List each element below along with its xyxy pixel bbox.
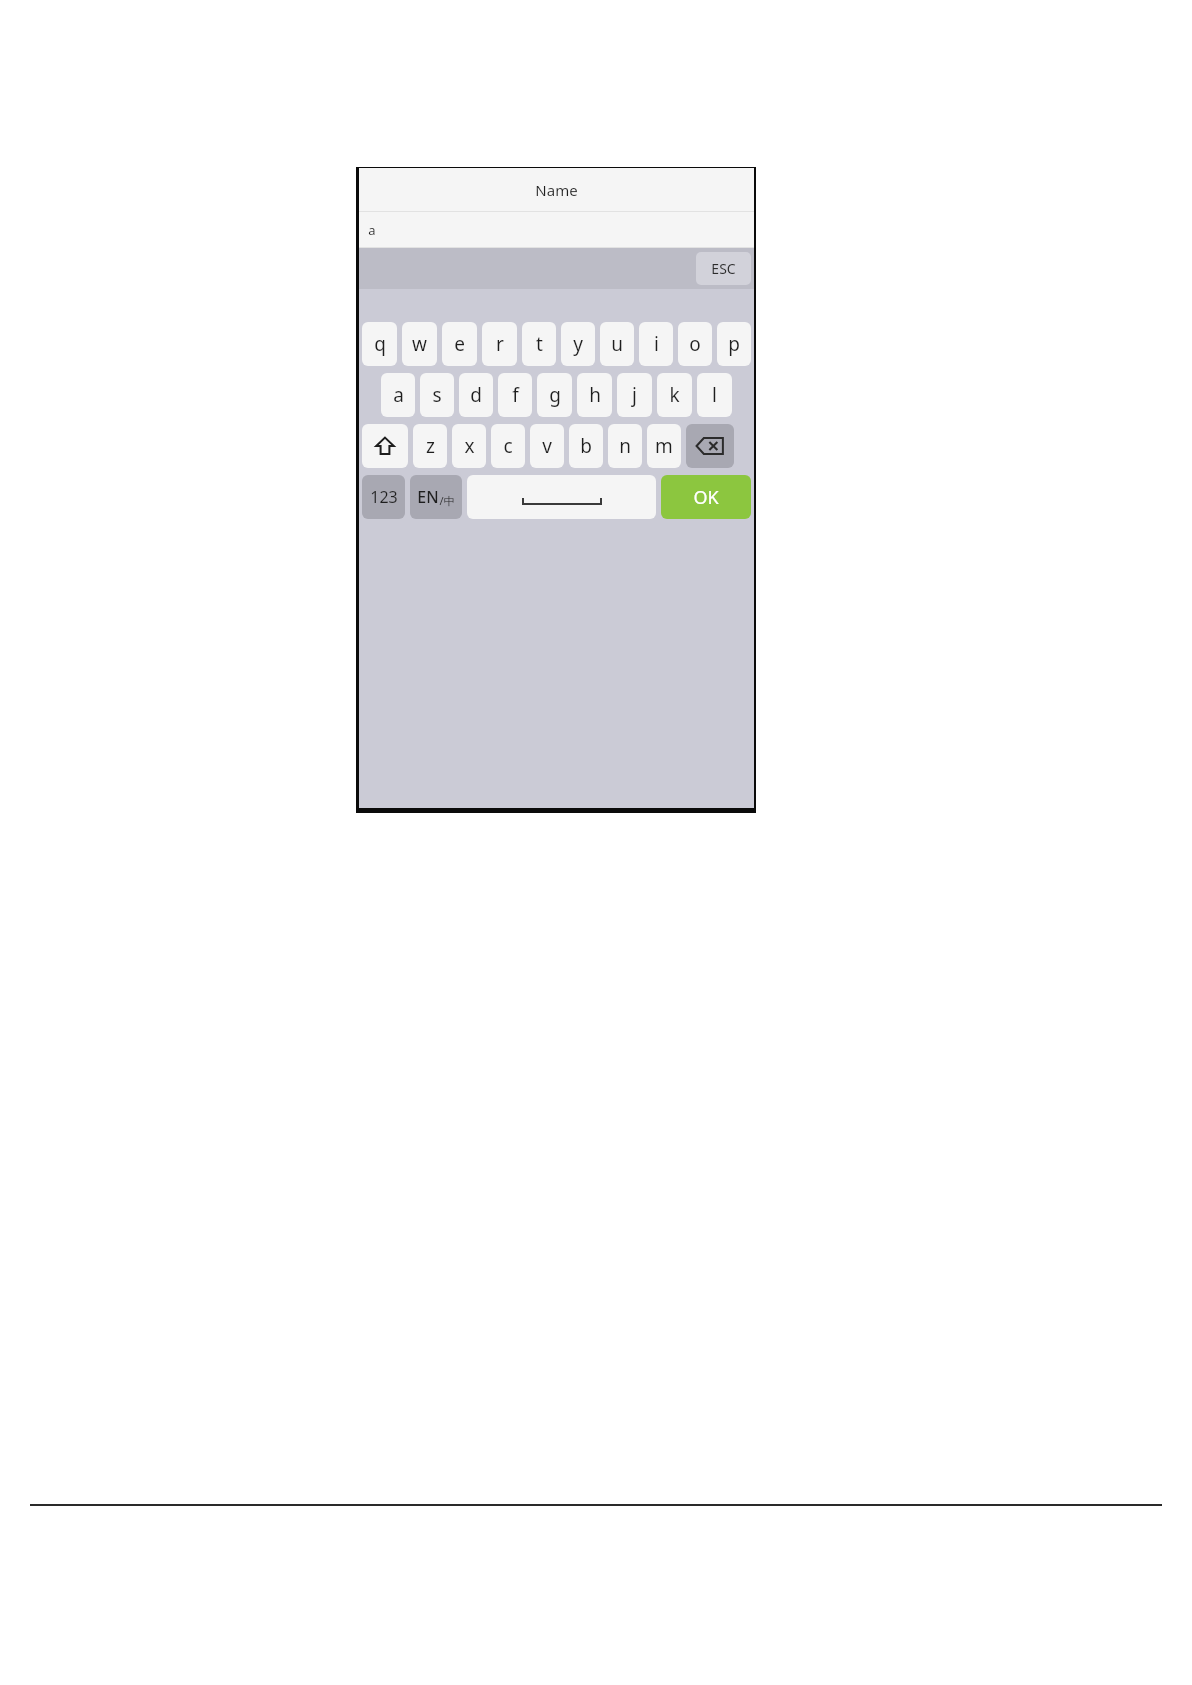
- button[interactable]: s: [420, 373, 454, 417]
- button[interactable]: n: [608, 424, 642, 468]
- staticText: f: [512, 382, 519, 408]
- button[interactable]: Name: [359, 168, 754, 211]
- staticText: m: [655, 433, 673, 459]
- staticText: z: [426, 433, 435, 459]
- staticText: EN: [417, 486, 439, 508]
- staticText: h: [589, 382, 601, 408]
- staticText: i: [654, 331, 659, 357]
- button[interactable]: b: [569, 424, 603, 468]
- staticText: v: [542, 433, 552, 459]
- staticText: j: [632, 382, 637, 408]
- staticText: /中: [439, 493, 455, 508]
- button[interactable]: a: [359, 212, 754, 247]
- staticText: b: [580, 433, 592, 459]
- staticText: e: [454, 331, 465, 357]
- staticText: p: [728, 331, 740, 357]
- staticText: 123: [370, 486, 398, 508]
- button[interactable]: m: [647, 424, 681, 468]
- button[interactable]: Space: [467, 475, 656, 519]
- button[interactable]: r: [482, 322, 517, 366]
- button[interactable]: t: [522, 322, 556, 366]
- staticText: d: [470, 382, 482, 408]
- button[interactable]: f: [498, 373, 532, 417]
- staticText: a: [393, 382, 404, 408]
- staticText: x: [464, 433, 475, 459]
- staticText: g: [549, 382, 561, 408]
- button[interactable]: Backspace: [686, 424, 734, 468]
- button[interactable]: 123: [362, 475, 405, 519]
- staticText: ESC: [711, 259, 736, 278]
- staticText: a: [368, 221, 376, 239]
- button[interactable]: l: [697, 373, 732, 417]
- staticText: c: [503, 433, 513, 459]
- button[interactable]: d: [459, 373, 493, 417]
- staticText: o: [689, 331, 701, 357]
- button[interactable]: k: [657, 373, 692, 417]
- staticText: y: [573, 331, 583, 357]
- button[interactable]: h: [577, 373, 612, 417]
- button[interactable]: j: [617, 373, 652, 417]
- staticText: n: [619, 433, 631, 459]
- staticText: s: [432, 382, 442, 408]
- staticText: t: [536, 331, 543, 357]
- staticText: l: [712, 382, 717, 408]
- button[interactable]: ESC: [696, 252, 751, 285]
- staticText: u: [611, 331, 623, 357]
- staticText: w: [412, 331, 427, 357]
- button[interactable]: p: [717, 322, 751, 366]
- staticText: r: [496, 331, 504, 357]
- button[interactable]: u: [600, 322, 634, 366]
- button[interactable]: Shift: [362, 424, 408, 468]
- button[interactable]: o: [678, 322, 712, 366]
- button[interactable]: y: [561, 322, 595, 366]
- button[interactable]: i: [639, 322, 673, 366]
- button[interactable]: e: [442, 322, 477, 366]
- button[interactable]: OK: [661, 475, 751, 519]
- button[interactable]: EN: [410, 475, 462, 519]
- button[interactable]: g: [537, 373, 572, 417]
- button[interactable]: z: [413, 424, 447, 468]
- staticText: q: [374, 331, 386, 357]
- button[interactable]: x: [452, 424, 486, 468]
- button[interactable]: a: [381, 373, 415, 417]
- button[interactable]: q: [362, 322, 397, 366]
- staticText: k: [669, 382, 680, 408]
- staticText: OK: [693, 485, 719, 510]
- staticText: Name: [535, 180, 578, 200]
- button[interactable]: c: [491, 424, 525, 468]
- button[interactable]: v: [530, 424, 564, 468]
- button[interactable]: w: [402, 322, 437, 366]
